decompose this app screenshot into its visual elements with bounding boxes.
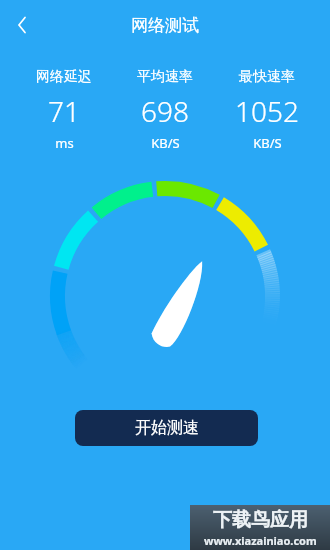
staticText: 1052 [235,92,299,130]
staticText: 开始测速 [135,418,199,438]
button[interactable]: Back [0,3,44,47]
staticText: 698 [141,92,189,130]
staticText: www.xiazainiao.com [204,533,317,547]
staticText: 网络延迟 [36,68,92,86]
staticText: 平均速率 [137,68,193,86]
staticText: 网络测试 [131,15,199,36]
staticText: KB/S [151,134,180,152]
staticText: 下载鸟应用 [213,508,308,532]
staticText: 最快速率 [239,68,295,86]
staticText: 71 [48,92,80,130]
staticText: ms [55,134,74,152]
button[interactable]: 开始测速 [75,410,258,446]
staticText: KB/S [253,134,282,152]
